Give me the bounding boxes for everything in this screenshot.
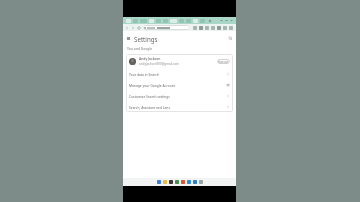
button[interactable]: Toolbar action <box>211 26 215 30</box>
button[interactable]: Taskbar app 7 <box>199 180 203 184</box>
button[interactable]: New tab <box>208 19 212 23</box>
button[interactable]: Taskbar app 6 <box>193 180 197 184</box>
button[interactable] <box>149 19 154 23</box>
button[interactable]: Taskbar app 2 <box>169 180 173 184</box>
button[interactable]: Taskbar app 0 <box>157 180 161 184</box>
staticText: andyjackson900@gmail.com <box>139 62 180 66</box>
button[interactable]: Menu <box>126 36 131 41</box>
button[interactable]: Manage your Google Account <box>126 79 233 90</box>
button[interactable]: Customise Search settings <box>126 90 233 101</box>
staticText: You and Google <box>127 46 153 51</box>
button[interactable]: Toolbar action <box>217 26 221 30</box>
button[interactable]: Back <box>125 26 129 30</box>
button[interactable]: Taskbar app 5 <box>187 180 191 184</box>
button[interactable]: Toolbar action <box>199 26 203 30</box>
staticText: Settings <box>134 35 158 43</box>
staticText: Search, Assistant and Lens <box>129 105 170 109</box>
button[interactable]: Window control <box>225 19 228 22</box>
button[interactable]: Toolbar action <box>229 26 233 30</box>
button[interactable]: Search <box>228 36 233 41</box>
button[interactable]: Your data in Search <box>126 68 233 79</box>
button[interactable]: Sign out <box>217 59 230 64</box>
button[interactable]: Andy Jackson <box>126 54 233 68</box>
staticText: Customise Search settings <box>129 94 170 98</box>
button[interactable]: Forward <box>131 26 135 30</box>
button[interactable] <box>143 25 190 30</box>
button[interactable]: Taskbar app 3 <box>175 180 179 184</box>
button[interactable] <box>170 19 177 23</box>
button[interactable]: Toolbar action <box>223 26 227 30</box>
button[interactable]: Search, Assistant and Lens <box>126 101 233 112</box>
button[interactable]: Taskbar app 1 <box>163 180 167 184</box>
staticText: Sign out <box>218 60 229 64</box>
staticText: Your data in Search <box>129 72 159 76</box>
button[interactable]: Toolbar action <box>193 26 197 30</box>
staticText: Andy Jackson <box>139 56 161 61</box>
staticText: Manage your Google Account <box>129 83 175 87</box>
button[interactable] <box>193 19 198 23</box>
button[interactable]: Toolbar action <box>205 26 209 30</box>
button[interactable]: Reload <box>137 26 141 30</box>
button[interactable]: Window control <box>220 19 223 22</box>
button[interactable] <box>126 19 131 23</box>
button[interactable]: Window control <box>230 19 233 22</box>
button[interactable]: Taskbar app 4 <box>181 180 185 184</box>
